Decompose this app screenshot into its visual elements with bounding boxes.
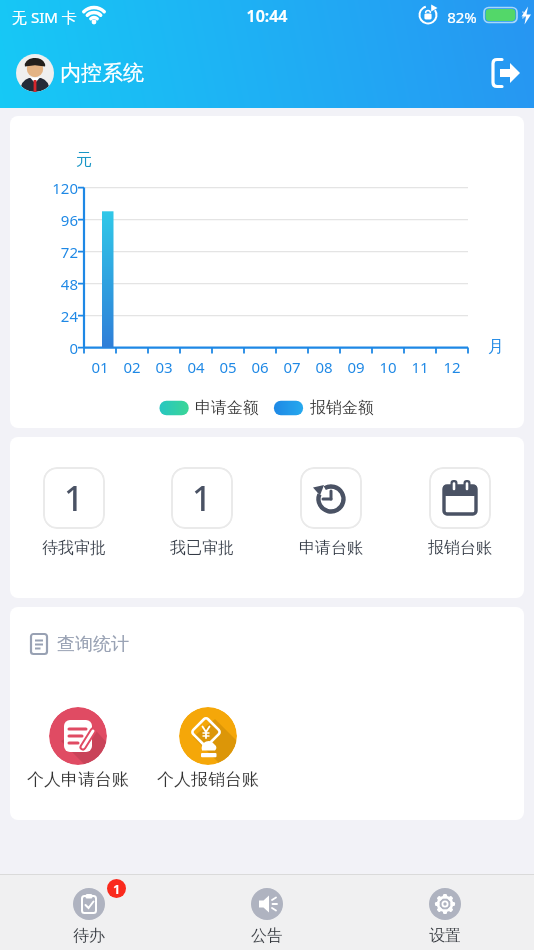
- button[interactable]: 1: [10, 437, 138, 598]
- staticText: 内控系统: [60, 60, 144, 86]
- staticText: 02: [123, 357, 141, 377]
- staticText: 72: [60, 242, 78, 262]
- staticText: 0: [69, 338, 78, 358]
- staticText: 09: [347, 357, 365, 377]
- staticText: 48: [60, 274, 78, 294]
- staticText: 月: [488, 337, 504, 357]
- staticText: 96: [60, 210, 78, 230]
- staticText: 82%: [447, 7, 477, 27]
- staticText: 10:44: [246, 5, 288, 27]
- staticText: 1: [192, 475, 212, 521]
- staticText: 05: [219, 357, 237, 377]
- staticText: 申请台账: [299, 538, 363, 558]
- staticText: 1: [113, 880, 121, 898]
- staticText: 个人报销台账: [157, 769, 259, 790]
- button[interactable]: 公告: [178, 874, 356, 950]
- staticText: 03: [155, 357, 173, 377]
- staticText: 120: [52, 178, 78, 198]
- staticText: 08: [315, 357, 333, 377]
- staticText: 01: [91, 357, 109, 377]
- button[interactable]: 设置: [356, 874, 534, 950]
- button[interactable]: [179, 707, 237, 765]
- staticText: 12: [443, 357, 461, 377]
- button[interactable]: [16, 54, 54, 92]
- staticText: 10: [379, 357, 397, 377]
- staticText: 11: [411, 357, 429, 377]
- button[interactable]: 1: [138, 437, 266, 598]
- staticText: 04: [187, 357, 205, 377]
- staticText: 设置: [429, 926, 461, 946]
- staticText: 个人申请台账: [27, 769, 129, 790]
- staticText: 待我审批: [42, 538, 106, 558]
- staticText: 07: [283, 357, 301, 377]
- button[interactable]: 申请台账: [266, 437, 395, 598]
- button[interactable]: [49, 707, 107, 765]
- staticText: 06: [251, 357, 269, 377]
- staticText: 24: [60, 306, 78, 326]
- staticText: 元: [76, 150, 92, 170]
- staticText: 无 SIM 卡: [12, 7, 77, 27]
- staticText: 我已审批: [170, 538, 234, 558]
- button[interactable]: 报销台账: [395, 437, 524, 598]
- button[interactable]: 1: [0, 874, 178, 950]
- staticText: 公告: [251, 926, 283, 946]
- staticText: 报销金额: [310, 398, 374, 418]
- button[interactable]: [488, 56, 524, 92]
- staticText: 1: [64, 475, 84, 521]
- staticText: 申请金额: [195, 398, 259, 418]
- staticText: 报销台账: [428, 538, 492, 558]
- staticText: 待办: [73, 926, 105, 946]
- staticText: 查询统计: [57, 633, 129, 656]
